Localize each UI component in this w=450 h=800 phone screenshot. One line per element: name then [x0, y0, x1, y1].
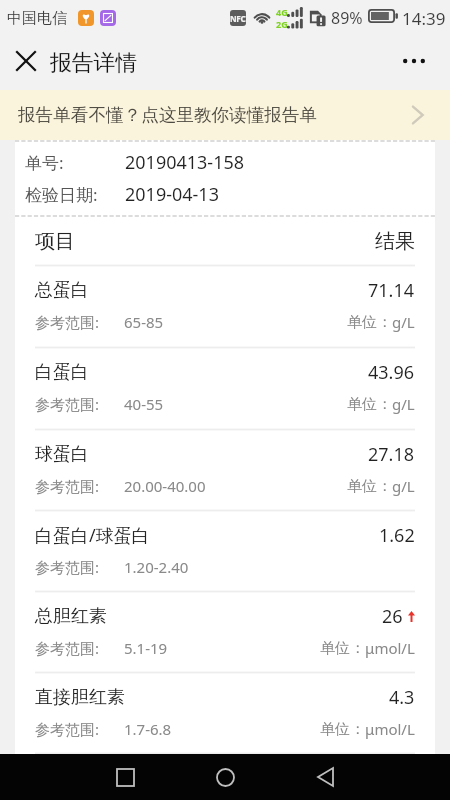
staticText: 2G [276, 18, 288, 30]
staticText: g/L [392, 476, 415, 496]
button[interactable]: 白蛋白/球蛋白 [15, 511, 435, 577]
staticText: 单位： [320, 639, 365, 658]
staticText: 5.1-19 [124, 638, 168, 658]
staticText: 89% [331, 7, 363, 29]
staticText: 参考范围: [35, 719, 100, 739]
staticText: 20.00-40.00 [124, 476, 206, 496]
staticText: 65-85 [124, 312, 164, 332]
button[interactable]: Home [175, 754, 275, 800]
button[interactable]: More options [396, 45, 432, 81]
button[interactable]: 报告单看不懂？点这里教你读懂报告单 [0, 90, 450, 140]
staticText: 直接胆红素 [35, 686, 125, 709]
staticText: 参考范围: [35, 394, 100, 414]
staticText: 白蛋白 [35, 361, 89, 384]
staticText: 结果 [375, 229, 415, 254]
staticText: 4.3 [389, 685, 415, 710]
staticText: g/L [392, 312, 415, 332]
button[interactable]: Close [10, 47, 42, 79]
staticText: 中国电信 [7, 9, 67, 28]
button[interactable]: 总胆红素 [15, 592, 435, 658]
staticText: 单位： [347, 395, 392, 414]
staticText: 2019-04-13 [125, 182, 219, 207]
staticText: 参考范围: [35, 638, 100, 658]
staticText: 26 [382, 604, 403, 629]
staticText: 14:39 [402, 7, 446, 30]
staticText: 参考范围: [35, 312, 100, 332]
staticText: 报告详情 [50, 49, 138, 76]
staticText: 单位： [320, 720, 365, 739]
staticText: 单号: [25, 151, 64, 174]
staticText: 71.14 [368, 278, 415, 303]
staticText: 总胆红素 [35, 605, 107, 628]
button[interactable]: 白蛋白 [15, 348, 435, 414]
staticText: 1.62 [379, 523, 415, 548]
staticText: 单位： [347, 477, 392, 496]
staticText: 总蛋白 [35, 279, 89, 302]
staticText: μmol/L [365, 638, 415, 658]
button[interactable]: 总蛋白 [15, 266, 435, 332]
button[interactable]: 直接胆红素 [15, 673, 435, 739]
button[interactable]: 球蛋白 [15, 430, 435, 496]
staticText: NFC [230, 13, 246, 24]
staticText: 1.7-6.8 [124, 719, 172, 739]
staticText: 1.20-2.40 [124, 557, 189, 577]
button[interactable]: Recents [75, 754, 175, 800]
staticText: 参考范围: [35, 557, 100, 577]
staticText: 27.18 [368, 442, 415, 467]
staticText: 43.96 [368, 360, 415, 385]
button[interactable]: Back [275, 754, 375, 800]
staticText: 参考范围: [35, 476, 100, 496]
staticText: 4G [276, 6, 288, 18]
staticText: 20190413-158 [125, 150, 245, 175]
staticText: 单位： [347, 313, 392, 332]
staticText: 40-55 [124, 394, 164, 414]
staticText: μmol/L [365, 719, 415, 739]
staticText: 检验日期: [25, 183, 98, 206]
staticText: 球蛋白 [35, 443, 89, 466]
staticText: 报告单看不懂？点这里教你读懂报告单 [18, 104, 318, 126]
staticText: 白蛋白/球蛋白 [35, 523, 150, 548]
staticText: g/L [392, 394, 415, 414]
staticText: 项目 [35, 229, 75, 254]
